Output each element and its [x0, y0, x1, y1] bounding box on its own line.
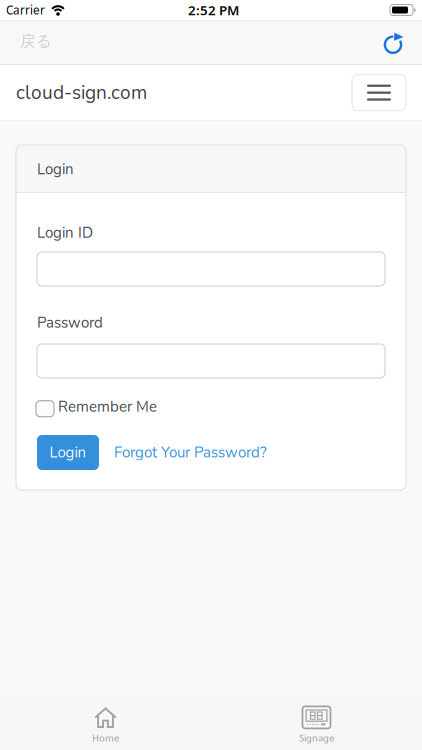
- staticText: Remember Me: [58, 397, 157, 417]
- staticText: Password: [37, 312, 103, 333]
- button[interactable]: 戻る: [20, 33, 52, 52]
- staticText: cloud-sign.com: [16, 80, 147, 106]
- staticText: Login: [49, 442, 86, 463]
- button[interactable]: Menu: [352, 75, 406, 111]
- button[interactable]: Signage: [211, 697, 422, 744]
- staticText: Signage: [299, 731, 334, 744]
- staticText: Forgot Your Password?: [114, 442, 267, 463]
- button[interactable]: Remember Me: [36, 398, 157, 419]
- button[interactable]: Login: [37, 435, 99, 470]
- staticText: Login: [37, 159, 74, 179]
- staticText: Home: [92, 731, 119, 744]
- staticText: Carrier: [6, 2, 45, 18]
- staticText: 戻る: [20, 31, 52, 51]
- staticText: 2:52 PM: [188, 1, 239, 19]
- button[interactable]: Home: [0, 697, 211, 744]
- staticText: Login ID: [37, 222, 93, 243]
- button[interactable]: Reload: [382, 29, 406, 55]
- button[interactable]: Forgot Your Password?: [114, 442, 267, 463]
